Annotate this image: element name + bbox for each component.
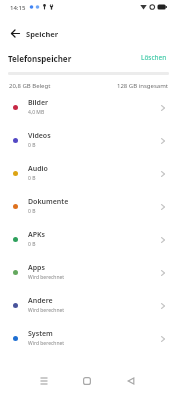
staticText: Speicher [26, 29, 59, 39]
button[interactable]: Bilder [0, 91, 177, 124]
button[interactable]: APKs [0, 223, 177, 256]
staticText: Dokumente [28, 197, 69, 207]
staticText: Apps [28, 263, 45, 273]
button[interactable]: Audio [0, 157, 177, 190]
staticText: 0 B [28, 241, 36, 248]
staticText: 0 B [28, 175, 36, 182]
staticText: 14:15 [10, 4, 26, 12]
staticText: 0 B [28, 208, 36, 215]
staticText: Telefonspeicher [8, 53, 72, 64]
staticText: Videos [28, 131, 51, 141]
staticText: Audio [28, 164, 48, 174]
button[interactable]: System [0, 322, 177, 355]
staticText: Bilder [28, 98, 49, 108]
staticText: Wird berechnet [28, 307, 65, 314]
button[interactable]: Apps [0, 256, 177, 289]
staticText: 4,0 MB [28, 109, 45, 116]
button[interactable]: Dokumente [0, 190, 177, 223]
staticText: Wird berechnet [28, 274, 65, 281]
button[interactable]: Videos [0, 124, 177, 157]
staticText: Löschen [141, 53, 167, 62]
button[interactable] [6, 24, 24, 42]
button[interactable] [77, 371, 97, 391]
staticText: APKs [28, 230, 45, 240]
staticText: Andere [28, 296, 53, 306]
staticText: 20,8 GB Belegt [9, 82, 51, 90]
button[interactable]: Andere [0, 289, 177, 322]
staticText: System [28, 329, 53, 339]
button[interactable]: Löschen [139, 51, 169, 64]
button[interactable] [34, 371, 54, 391]
staticText: 128 GB insgesamt [117, 82, 168, 90]
button[interactable] [121, 371, 141, 391]
staticText: 0 B [28, 142, 36, 149]
staticText: Wird berechnet [28, 340, 65, 347]
